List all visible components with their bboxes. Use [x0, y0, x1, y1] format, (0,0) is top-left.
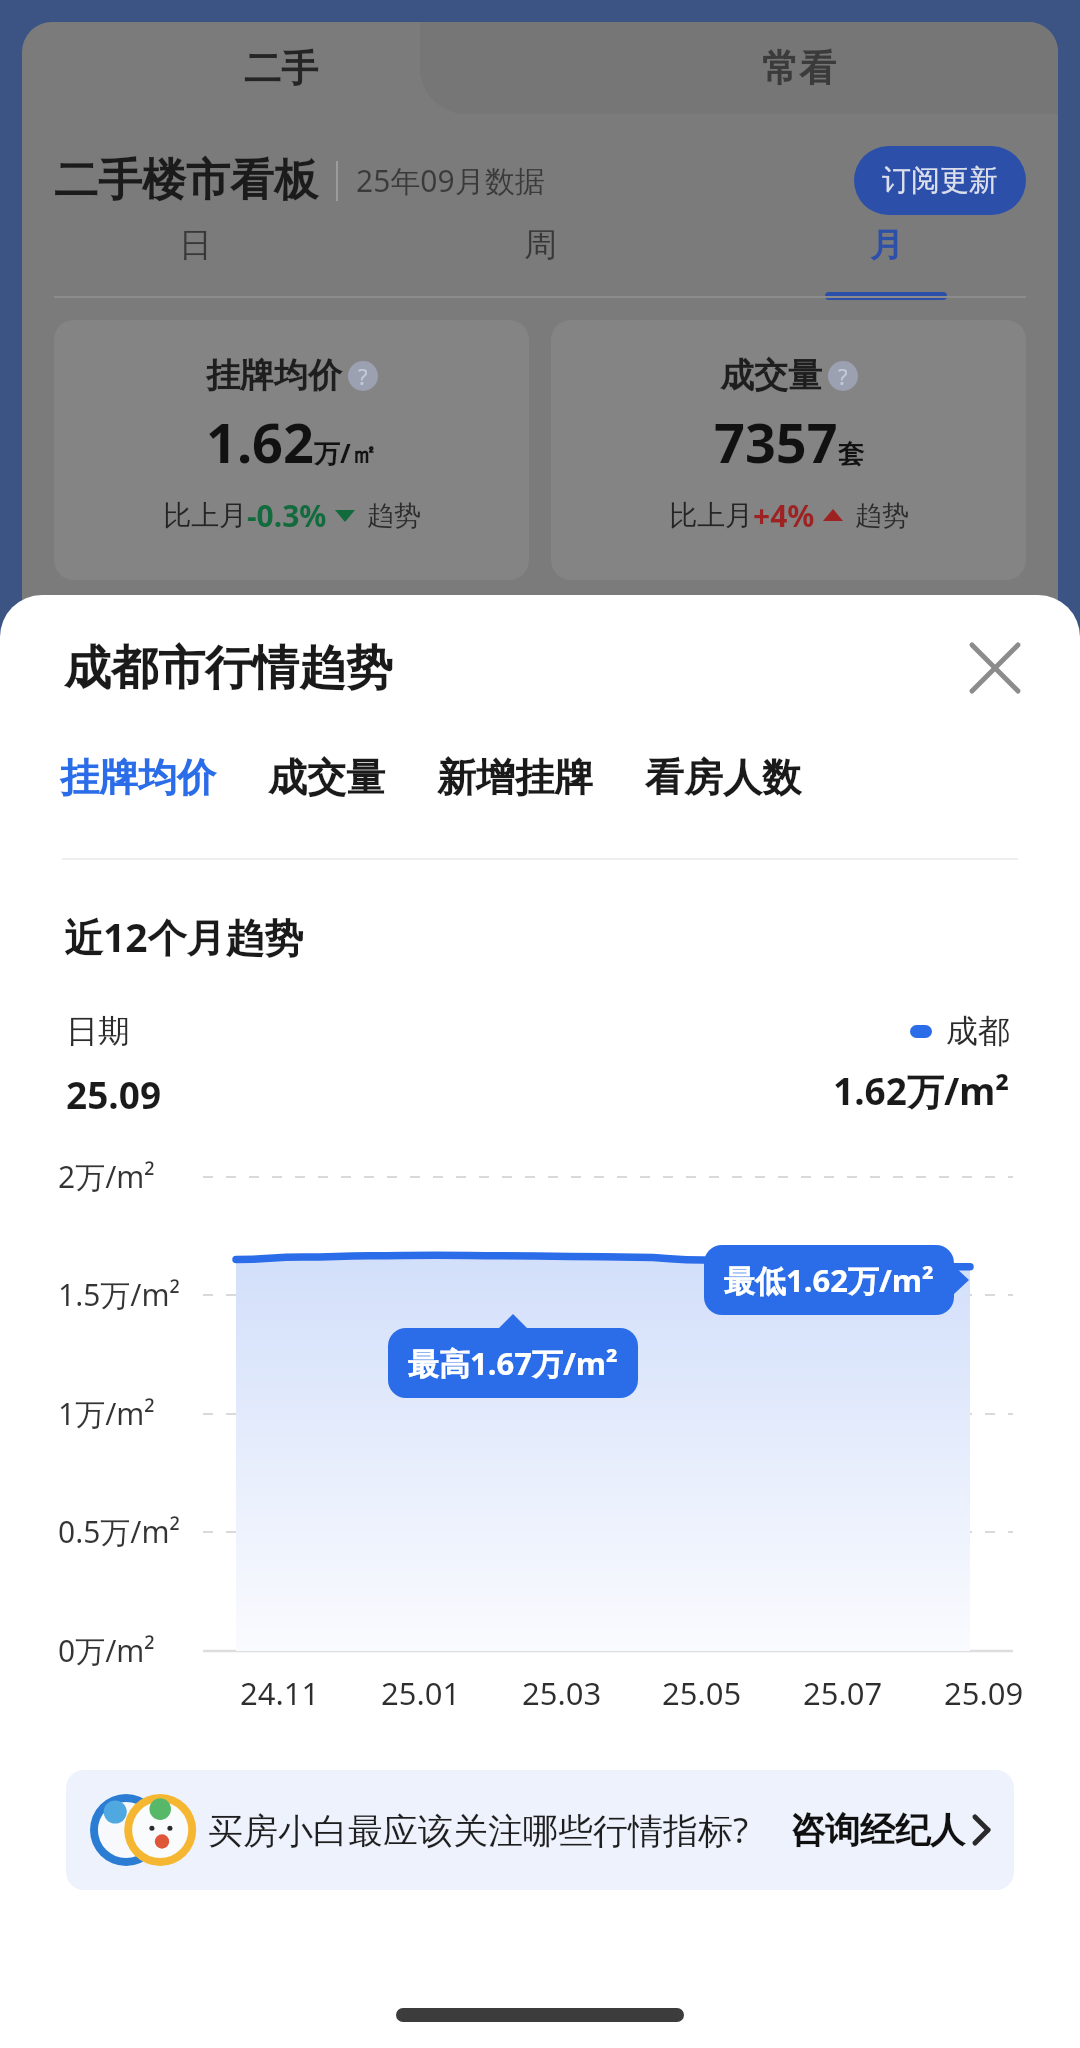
- staticText: -0.3%: [247, 495, 327, 536]
- button[interactable]: 订阅更新: [854, 146, 1026, 215]
- staticText: 订阅更新: [882, 162, 998, 199]
- staticText: 成交量: [268, 753, 385, 802]
- staticText: 最高1.67万/m²: [408, 1342, 618, 1384]
- staticText: 日期: [66, 1011, 130, 1051]
- staticText: 二手: [244, 45, 318, 92]
- staticText: 比上月: [669, 498, 753, 533]
- button[interactable]: 常看: [540, 22, 1058, 114]
- staticText: 看房人数: [645, 753, 801, 802]
- staticText: 最低1.62万/m²: [724, 1259, 934, 1301]
- staticText: 万/㎡: [314, 435, 377, 471]
- staticText: 趋势: [855, 499, 909, 533]
- staticText: 套: [838, 438, 864, 471]
- staticText: 25.01: [381, 1672, 461, 1714]
- staticText: 1.62万/m²: [833, 1065, 1010, 1116]
- staticText: 常看: [762, 45, 836, 92]
- staticText: 周: [524, 224, 557, 266]
- staticText: 月: [870, 224, 903, 266]
- staticText: 成交量: [720, 354, 822, 397]
- staticText: ?: [838, 361, 848, 391]
- staticText: 7357: [714, 405, 838, 479]
- staticText: 挂牌均价: [206, 354, 342, 397]
- staticText: +4%: [753, 495, 815, 536]
- button[interactable]: 买房小白最应该关注哪些行情指标?: [66, 1770, 1014, 1890]
- staticText: 1.62: [206, 405, 314, 479]
- staticText: 趋势: [367, 499, 421, 533]
- staticText: 1.5万/m²: [58, 1274, 181, 1315]
- staticText: 0.5万/m²: [58, 1511, 181, 1552]
- button[interactable]: 成交量: [268, 741, 385, 814]
- staticText: 1万/m²: [58, 1393, 155, 1434]
- staticText: 比上月: [163, 498, 247, 533]
- staticText: 25.09: [66, 1069, 162, 1119]
- staticText: 日: [179, 224, 212, 266]
- staticText: 24.11: [240, 1672, 320, 1714]
- button[interactable]: Close: [952, 625, 1038, 711]
- staticText: 二手楼市看板: [54, 153, 318, 208]
- button[interactable]: 新增挂牌: [437, 741, 593, 814]
- staticText: ?: [358, 361, 368, 391]
- staticText: 买房小白最应该关注哪些行情指标?: [208, 1806, 749, 1854]
- staticText: 挂牌均价: [60, 753, 216, 802]
- staticText: 咨询经纪人: [790, 1808, 965, 1852]
- staticText: 成都: [946, 1011, 1010, 1051]
- staticText: 25.07: [803, 1672, 883, 1714]
- button[interactable]: 日: [22, 224, 368, 292]
- staticText: 2万/m²: [58, 1156, 155, 1197]
- staticText: 成都市行情趋势: [64, 639, 393, 698]
- button[interactable]: 二手: [22, 22, 540, 114]
- button[interactable]: 挂牌均价: [60, 741, 216, 814]
- button[interactable]: 挂牌均价: [54, 320, 529, 580]
- button[interactable]: 月: [713, 224, 1058, 300]
- staticText: 0万/m²: [58, 1630, 155, 1671]
- staticText: 25.03: [522, 1672, 602, 1714]
- button[interactable]: 周: [368, 224, 713, 292]
- staticText: 新增挂牌: [437, 753, 593, 802]
- staticText: 25.09: [944, 1672, 1024, 1714]
- button[interactable]: 看房人数: [645, 741, 801, 814]
- staticText: 25年09月数据: [356, 160, 545, 201]
- staticText: 25.05: [662, 1672, 742, 1714]
- staticText: 近12个月趋势: [64, 910, 304, 963]
- button[interactable]: 成交量: [551, 320, 1026, 580]
